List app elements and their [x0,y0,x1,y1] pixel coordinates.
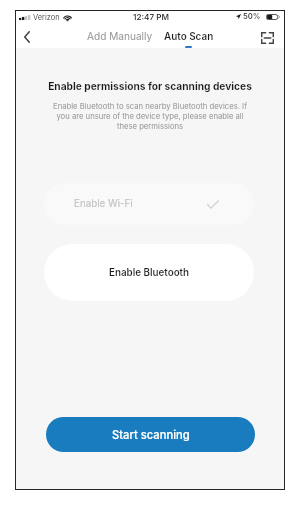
staticText: Enable Wi-Fi [74,198,133,210]
button[interactable]: Start scanning [46,417,255,452]
button[interactable]: Back [14,25,40,49]
staticText: 50% [243,12,261,21]
staticText: Auto Scan [164,30,214,42]
staticText: Add Manually [87,30,153,42]
staticText: Enable permissions for scanning devices [48,80,252,92]
staticText: Enable Bluetooth to scan nearby Bluetoot… [52,102,248,131]
button[interactable]: Enable Wi-Fi [44,183,254,225]
staticText: Enable Bluetooth [109,267,190,279]
staticText: Verizon [33,13,60,22]
staticText: 12:47 PM [133,12,170,22]
button[interactable]: Add Manually [80,26,160,46]
button[interactable]: Enable Bluetooth [44,244,254,301]
button[interactable]: Scan code [254,26,280,50]
button[interactable]: Auto Scan [157,26,221,46]
staticText: Start scanning [112,428,190,442]
